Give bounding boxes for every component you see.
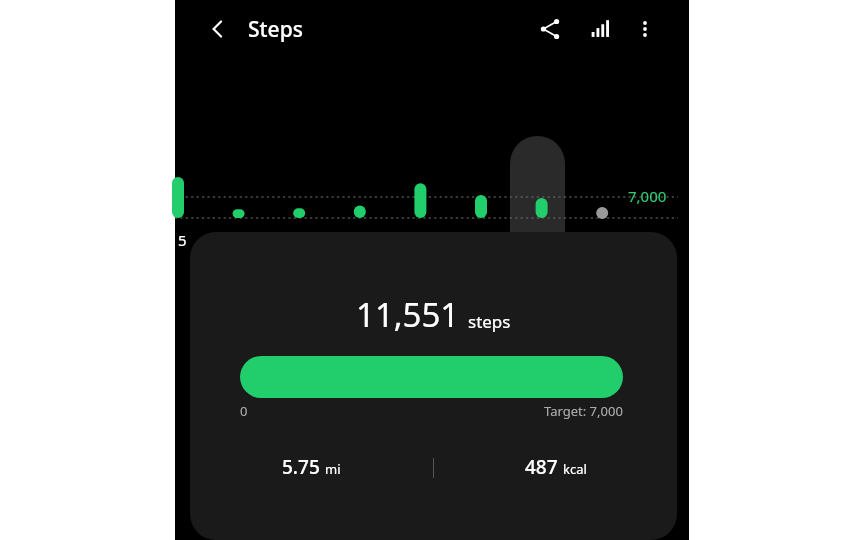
button[interactable]: 20 bbox=[451, 230, 511, 256]
staticText: steps bbox=[468, 310, 511, 333]
button[interactable]: 19 bbox=[390, 230, 450, 256]
button[interactable]: 487 bbox=[434, 454, 677, 488]
button[interactable]: 18 bbox=[330, 230, 390, 256]
staticText: 20 bbox=[472, 230, 490, 250]
staticText: 17 bbox=[290, 230, 308, 250]
button[interactable]: 22 bbox=[572, 230, 632, 256]
button[interactable]: 5.75 bbox=[190, 454, 433, 488]
button[interactable]: 15 bbox=[148, 230, 208, 256]
staticText: 19 bbox=[411, 230, 429, 250]
button[interactable]: Chart bbox=[580, 9, 620, 49]
button[interactable]: More options bbox=[625, 9, 665, 49]
button[interactable]: Share bbox=[530, 9, 570, 49]
staticText: kcal bbox=[563, 460, 587, 478]
button[interactable]: 16 bbox=[209, 230, 269, 256]
staticText: mi bbox=[325, 460, 341, 478]
staticText: 487 bbox=[525, 454, 558, 480]
staticText: 21/10 bbox=[522, 230, 563, 250]
staticText: 5.75 bbox=[282, 454, 320, 480]
button[interactable]: 11,551 bbox=[190, 232, 677, 540]
staticText: Steps bbox=[248, 15, 303, 44]
staticText: 15 bbox=[169, 230, 187, 250]
staticText: 18 bbox=[351, 230, 369, 250]
staticText: 0 bbox=[240, 402, 248, 420]
staticText: Target: 7,000 bbox=[544, 402, 623, 420]
staticText: 11,551 bbox=[356, 292, 460, 337]
button[interactable] bbox=[240, 356, 623, 398]
staticText: 22 bbox=[593, 230, 611, 250]
staticText: 7,000 bbox=[628, 186, 667, 206]
staticText: 16 bbox=[230, 230, 248, 250]
button[interactable]: Navigate up bbox=[198, 9, 238, 49]
button[interactable]: 17 bbox=[269, 230, 329, 256]
button[interactable]: 21/10 bbox=[512, 230, 572, 256]
